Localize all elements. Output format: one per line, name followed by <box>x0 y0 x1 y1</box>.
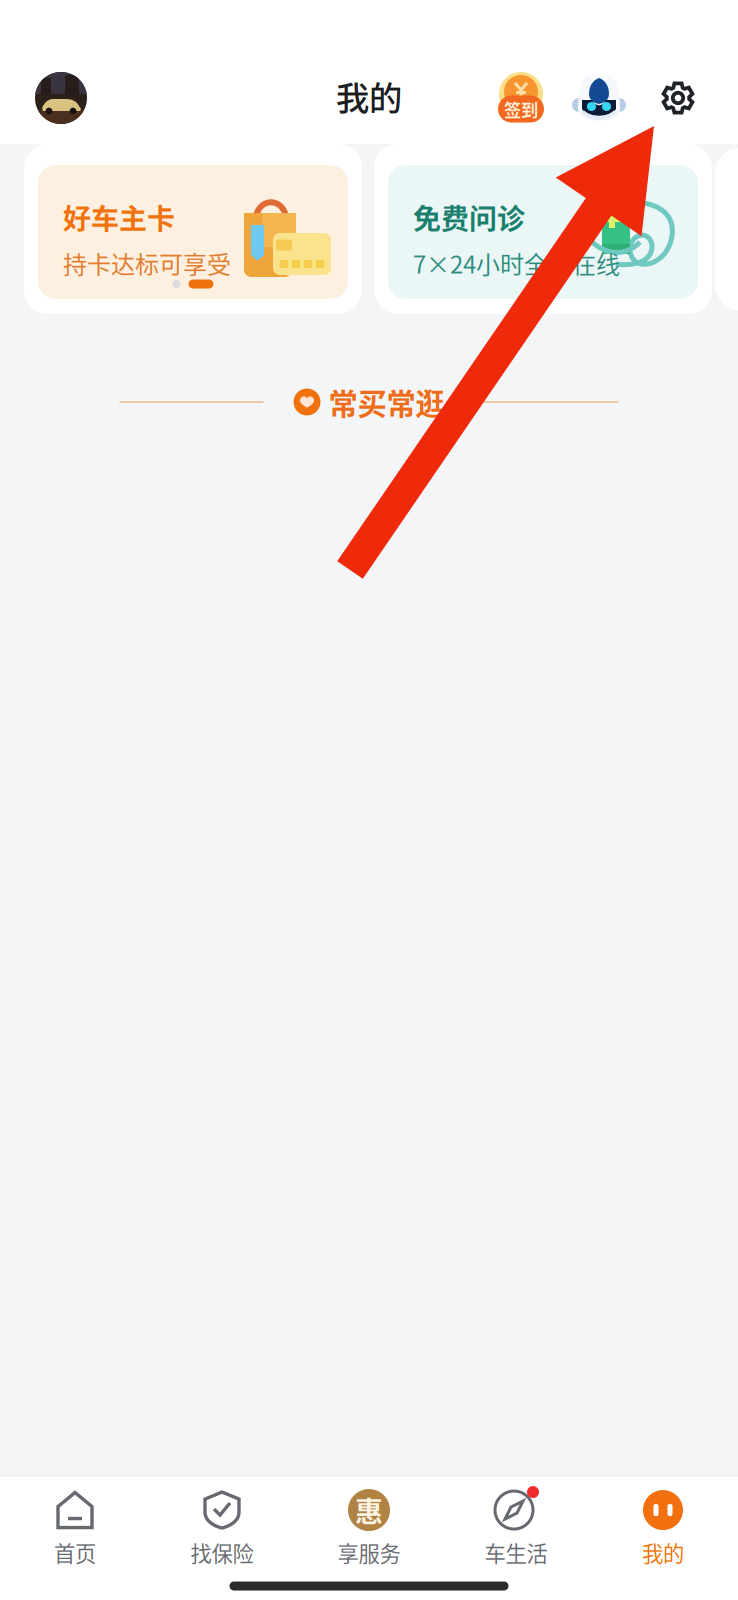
button[interactable]: 车生活 <box>442 1478 589 1578</box>
staticText: 免费问诊 <box>413 197 525 237</box>
button[interactable]: 我的 <box>589 1478 736 1578</box>
button[interactable]: 智能助手 <box>569 66 629 128</box>
staticText: 常买常逛 <box>328 381 444 423</box>
button[interactable]: 找保险 <box>148 1478 295 1578</box>
button[interactable]: 个人头像 <box>23 60 99 136</box>
staticText: 首页 <box>54 1537 96 1568</box>
button[interactable]: 设置 <box>647 67 709 129</box>
staticText: 我的 <box>336 72 402 120</box>
staticText: 享服务 <box>337 1537 400 1568</box>
staticText: 车生活 <box>484 1537 547 1568</box>
staticText: 惠 <box>355 1490 383 1530</box>
staticText: 好车主卡 <box>63 197 175 237</box>
staticText: 签到 <box>504 96 538 122</box>
staticText: 我的 <box>642 1537 684 1568</box>
button[interactable]: 惠 <box>295 1478 442 1578</box>
staticText: 持卡达标可享受 <box>63 245 231 280</box>
staticText: 7×24小时全天在线 <box>413 245 620 280</box>
staticText: 找保险 <box>190 1537 253 1568</box>
button[interactable]: 首页 <box>1 1478 148 1578</box>
button[interactable]: 签到 <box>488 64 554 130</box>
button[interactable]: 免费问诊 <box>374 144 712 314</box>
button[interactable]: 好车主卡 <box>24 144 362 314</box>
